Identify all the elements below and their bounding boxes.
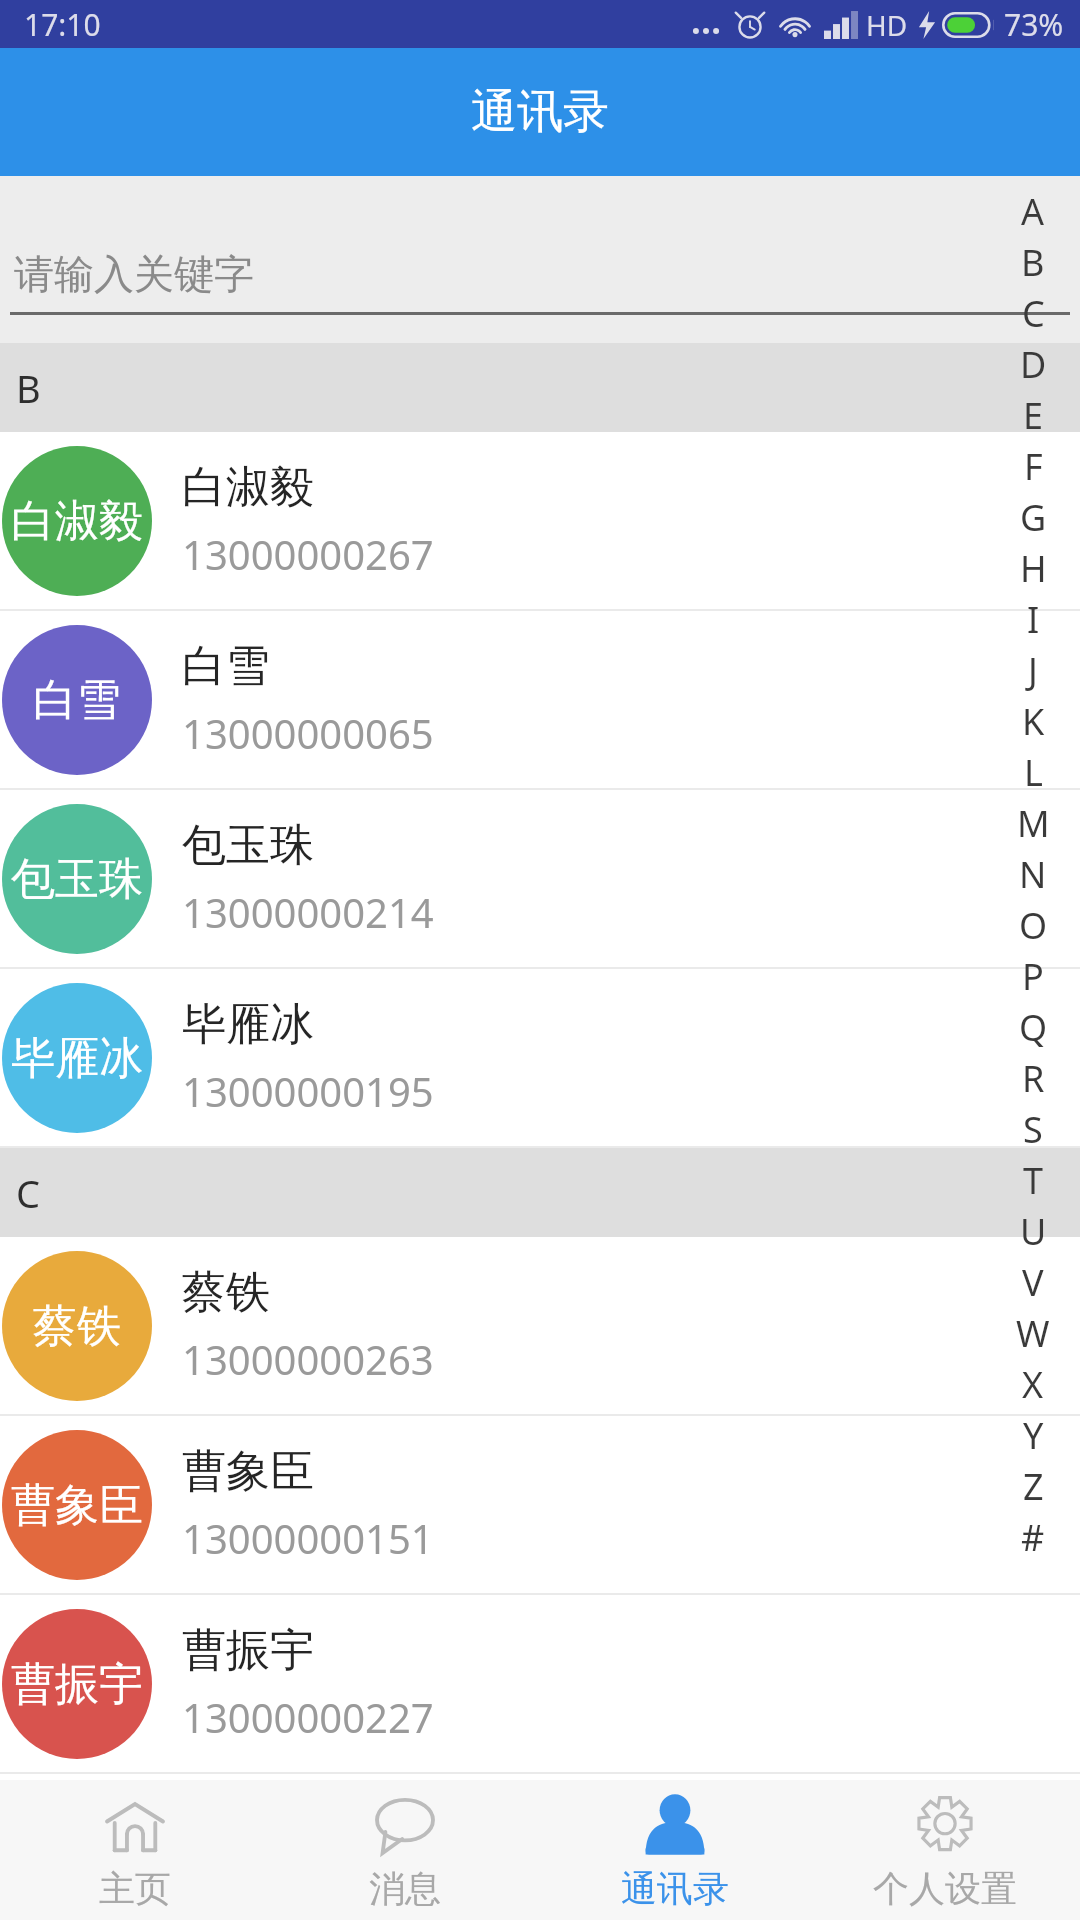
staticText: 毕雁冰 xyxy=(11,1031,143,1086)
staticText: HD xyxy=(866,6,908,44)
staticText: C xyxy=(16,1167,41,1219)
staticText: J xyxy=(1028,646,1038,695)
staticText: 73% xyxy=(1004,4,1064,45)
staticText: 曹振宇 xyxy=(11,1657,143,1712)
staticText: 主页 xyxy=(99,1866,171,1911)
staticText: 13000000065 xyxy=(182,706,434,760)
staticText: M xyxy=(1017,799,1050,848)
staticText: Y xyxy=(1023,1411,1044,1460)
button[interactable]: 消息 xyxy=(270,1780,540,1920)
staticText: 蔡铁 xyxy=(182,1265,270,1320)
staticText: 曹象臣 xyxy=(182,1444,314,1499)
staticText: S xyxy=(1023,1105,1043,1154)
staticText: X xyxy=(1022,1360,1044,1409)
button[interactable]: 个人设置 xyxy=(810,1780,1080,1920)
staticText: 17:10 xyxy=(24,4,101,45)
staticText: L xyxy=(1024,748,1043,797)
staticText: O xyxy=(1019,901,1048,950)
staticText: 包玉珠 xyxy=(182,818,314,873)
staticText: 蔡铁 xyxy=(33,1299,121,1354)
staticText: N xyxy=(1019,850,1047,899)
staticText: 毕雁冰 xyxy=(182,997,314,1052)
staticText: C xyxy=(1022,289,1045,338)
staticText: 消息 xyxy=(369,1866,441,1911)
staticText: 曹象臣 xyxy=(11,1478,143,1533)
staticText: 白淑毅 xyxy=(182,460,314,515)
button[interactable]: 白雪 xyxy=(0,611,1080,788)
staticText: Q xyxy=(1019,1003,1048,1052)
staticText: # xyxy=(1021,1513,1045,1562)
staticText: D xyxy=(1020,340,1047,389)
staticText: W xyxy=(1016,1309,1050,1358)
button[interactable]: 曹振宇 xyxy=(0,1595,1080,1772)
staticText: F xyxy=(1024,442,1043,491)
staticText: 13000000263 xyxy=(182,1332,434,1386)
staticText: 通讯录 xyxy=(621,1866,729,1911)
staticText: 白淑毅 xyxy=(11,494,143,549)
staticText: 曹振宇 xyxy=(182,1623,314,1678)
button[interactable]: 曹象臣 xyxy=(0,1416,1080,1593)
button[interactable]: 蔡铁 xyxy=(0,1237,1080,1414)
staticText: 13000000151 xyxy=(182,1511,434,1565)
staticText: 白雪 xyxy=(182,639,270,694)
staticText: U xyxy=(1020,1207,1047,1256)
staticText: R xyxy=(1022,1054,1045,1103)
staticText: 通讯录 xyxy=(471,83,609,141)
staticText: E xyxy=(1023,391,1044,440)
staticText: H xyxy=(1020,544,1047,593)
staticText: 13000000195 xyxy=(182,1064,434,1118)
staticText: 包玉珠 xyxy=(11,852,143,907)
staticText: 13000000214 xyxy=(182,885,434,939)
staticText: 13000000267 xyxy=(182,527,434,581)
staticText: K xyxy=(1022,697,1045,746)
staticText: Z xyxy=(1023,1462,1044,1511)
staticText: T xyxy=(1023,1156,1044,1205)
staticText: I xyxy=(1027,595,1040,644)
button[interactable]: 白淑毅 xyxy=(0,432,1080,609)
button[interactable]: 请输入关键字 xyxy=(0,176,1080,343)
button[interactable]: 毕雁冰 xyxy=(0,969,1080,1146)
staticText: G xyxy=(1020,493,1047,542)
button[interactable]: Alphabet index xyxy=(1012,186,1054,1563)
staticText: 请输入关键字 xyxy=(14,249,254,299)
staticText: V xyxy=(1022,1258,1044,1307)
button[interactable]: 主页 xyxy=(0,1780,270,1920)
button[interactable]: 通讯录 xyxy=(540,1780,810,1920)
staticText: B xyxy=(1021,238,1045,287)
staticText: A xyxy=(1021,187,1045,236)
staticText: 白雪 xyxy=(33,673,121,728)
staticText: 个人设置 xyxy=(873,1866,1017,1911)
staticText: B xyxy=(16,362,41,414)
button[interactable]: 包玉珠 xyxy=(0,790,1080,967)
staticText: 13000000227 xyxy=(182,1690,434,1744)
staticText: P xyxy=(1022,952,1044,1001)
